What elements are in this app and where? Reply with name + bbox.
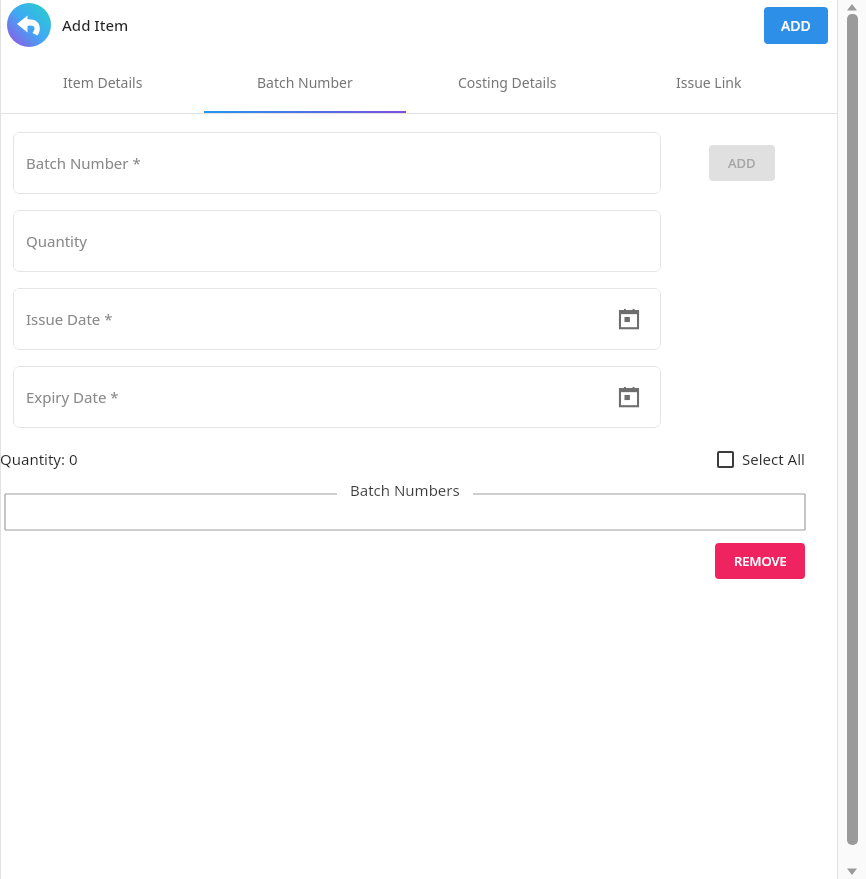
button[interactable]: ADD	[709, 145, 775, 181]
staticText: ADD	[781, 16, 811, 35]
button[interactable]: Scroll	[847, 14, 858, 845]
button[interactable]: ADD	[764, 7, 828, 44]
button[interactable]: Expiry Date *	[13, 366, 661, 428]
button[interactable]: REMOVE	[715, 543, 805, 579]
staticText: Issue Date *	[26, 309, 113, 329]
button[interactable]: Issue Date *	[13, 288, 661, 350]
button[interactable]: Pick date	[617, 307, 641, 331]
button[interactable]: Costing Details	[406, 50, 608, 114]
staticText: ADD	[728, 154, 756, 172]
staticText: Item Details	[63, 73, 143, 92]
staticText: Expiry Date *	[26, 387, 119, 407]
staticText: Issue Link	[676, 73, 742, 92]
button[interactable]: Item Details	[2, 50, 204, 114]
staticText: Quantity: 0	[0, 449, 78, 469]
staticText: Batch Numbers	[350, 480, 460, 500]
button[interactable]: Quantity	[13, 210, 661, 272]
button[interactable]: Back	[7, 3, 51, 47]
staticText: Batch Number	[257, 73, 353, 92]
button[interactable]: Batch Number	[204, 50, 406, 114]
staticText: Add Item	[62, 15, 129, 35]
staticText: REMOVE	[734, 552, 787, 570]
staticText: Costing Details	[458, 73, 557, 92]
staticText: Select All	[742, 449, 805, 469]
staticText: Quantity	[26, 231, 88, 251]
button[interactable]: Issue Link	[608, 50, 810, 114]
button[interactable]: Select All	[717, 449, 805, 469]
staticText: Batch Number *	[26, 153, 141, 173]
button[interactable]: Pick date	[617, 385, 641, 409]
button[interactable]: Batch Number *	[13, 132, 661, 194]
